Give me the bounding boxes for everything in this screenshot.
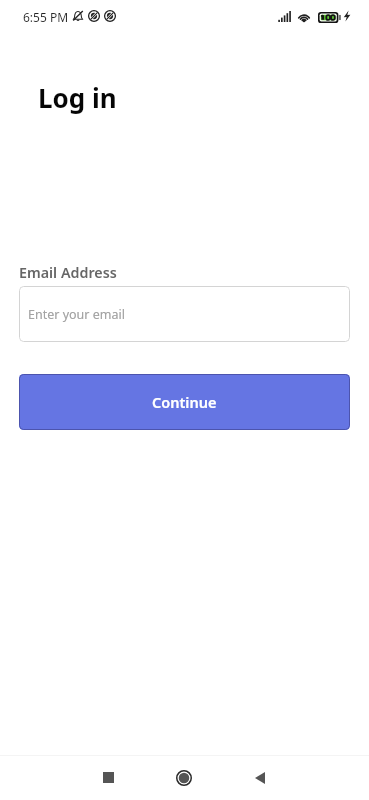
staticText: Email Address [19, 263, 117, 282]
staticText: Log in [38, 80, 117, 115]
staticText: Enter your email [28, 306, 125, 323]
button[interactable]: Continue [19, 374, 350, 430]
staticText: 6:55 PM [23, 9, 69, 25]
button[interactable]: Recent apps [84, 755, 132, 800]
staticText: Continue [152, 392, 217, 412]
button[interactable]: Email address input [19, 286, 350, 342]
button[interactable]: Back [236, 755, 284, 800]
button[interactable]: Home [160, 755, 208, 800]
